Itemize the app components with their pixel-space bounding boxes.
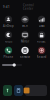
button[interactable]: Remote: [17, 47, 33, 59]
button[interactable]: Focus: [0, 31, 17, 43]
button[interactable]: Rotate: [33, 31, 50, 43]
staticText: Focus: [5, 40, 12, 43]
button[interactable]: Flashlight: [3, 85, 12, 96]
staticText: AirDrop: [3, 24, 14, 28]
button[interactable]: Wi-Fi: [17, 16, 33, 28]
button[interactable]: Mirror: [17, 31, 33, 43]
button[interactable]: Data: [33, 16, 50, 28]
staticText: Data: [39, 24, 44, 28]
button[interactable]: Record: [33, 47, 50, 59]
button[interactable]: AirDrop: [0, 16, 17, 28]
staticText: 9:41: [3, 5, 10, 9]
staticText: Rotate: [37, 40, 46, 43]
button[interactable]: Calculator: [14, 85, 23, 96]
staticText: Wi-Fi: [22, 24, 28, 28]
staticText: Remote: [19, 55, 30, 59]
staticText: Control Center: [23, 3, 34, 11]
staticText: Mirror: [21, 40, 29, 43]
button[interactable]: Midnight: [25, 85, 47, 96]
staticText: Phone: [3, 55, 13, 59]
staticText: Record: [37, 55, 47, 59]
button[interactable]: Phone: [0, 47, 17, 59]
